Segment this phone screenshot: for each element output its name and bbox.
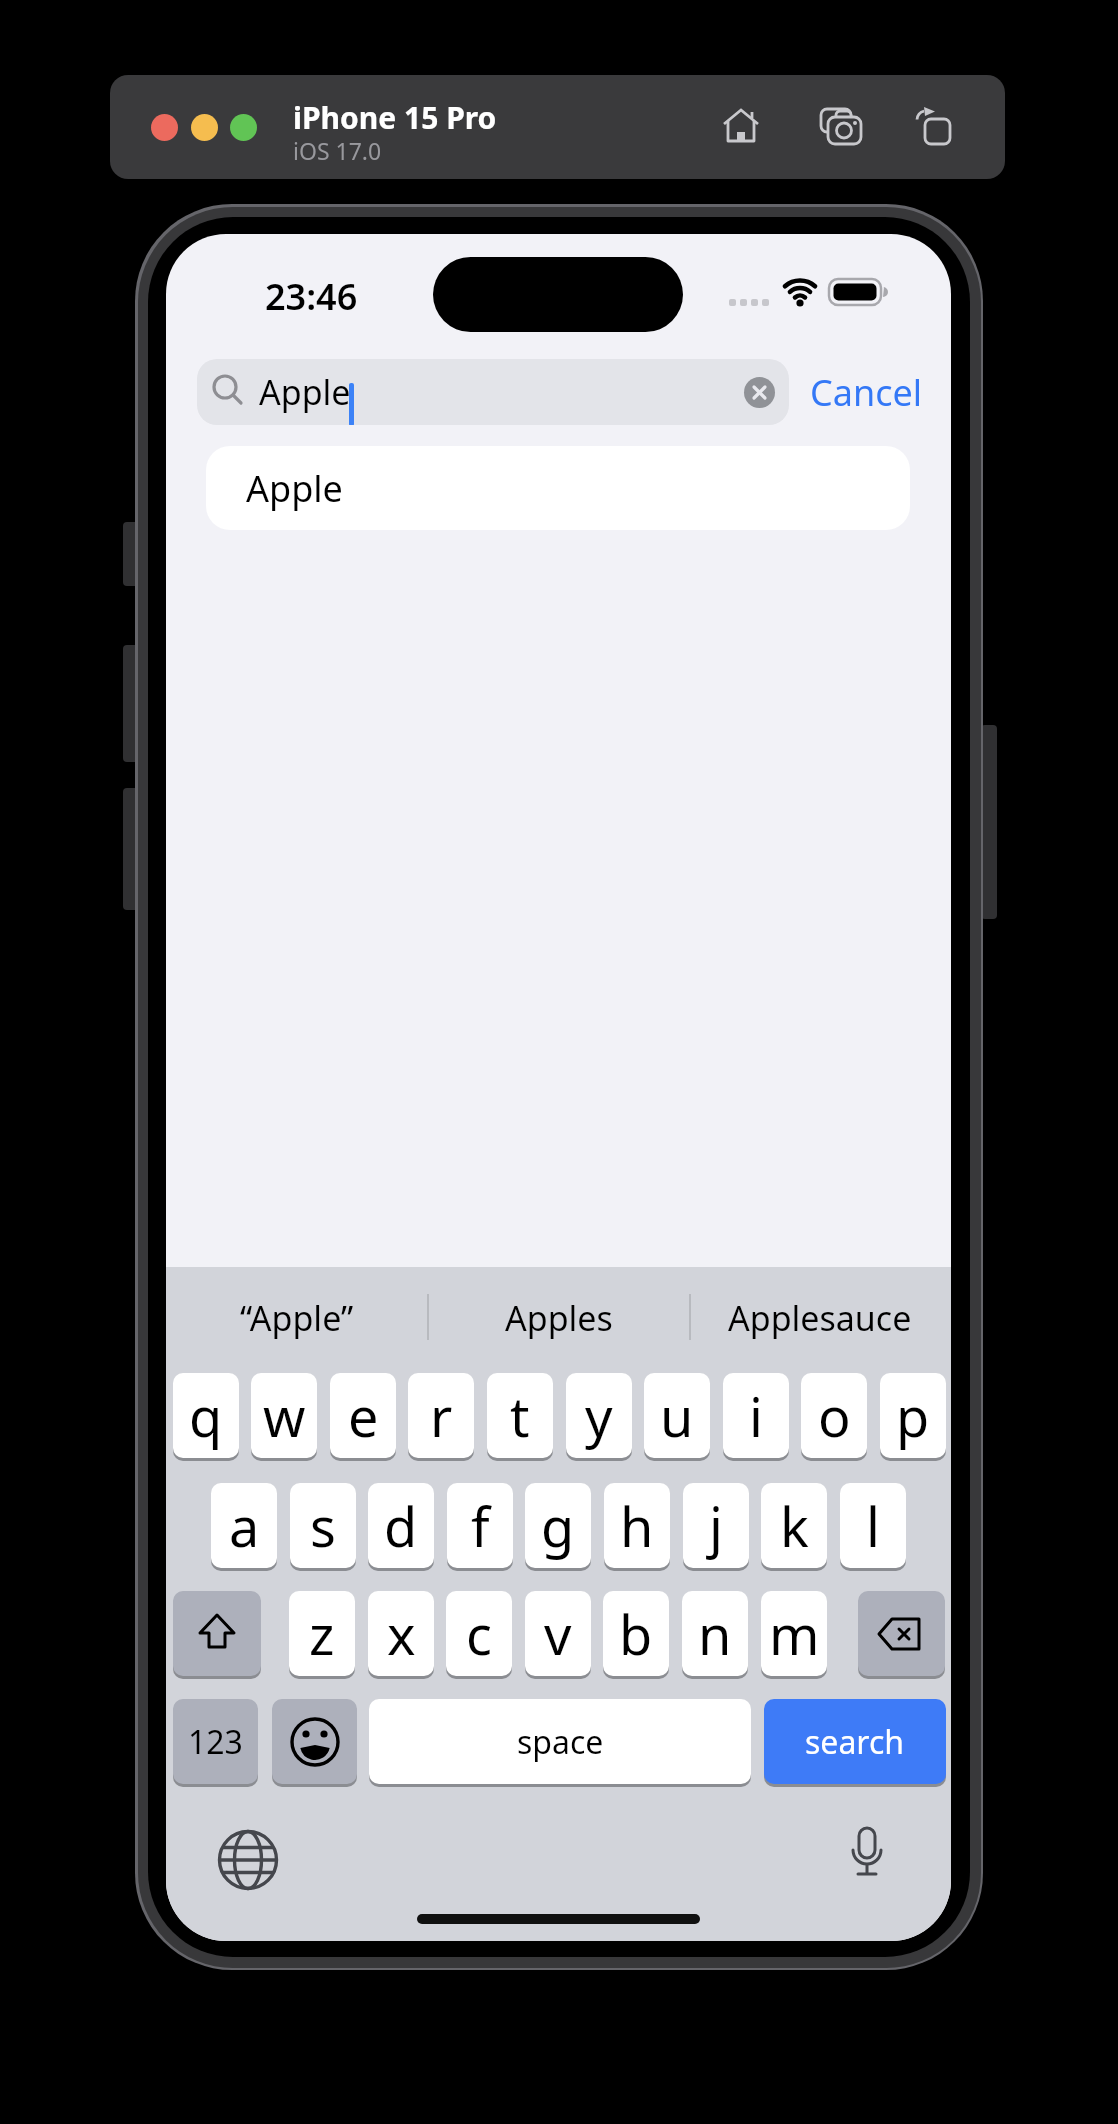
staticText: y: [585, 1379, 613, 1453]
staticText: g: [541, 1489, 575, 1563]
button[interactable]: u: [644, 1373, 710, 1458]
staticText: i: [749, 1379, 763, 1453]
staticText: 123: [188, 1720, 243, 1764]
button[interactable]: Apple: [206, 446, 910, 530]
button[interactable]: b: [603, 1591, 669, 1676]
staticText: m: [769, 1597, 820, 1671]
button[interactable]: [723, 108, 759, 144]
staticText: space: [517, 1720, 604, 1764]
staticText: Apple: [246, 464, 343, 513]
button[interactable]: [849, 1826, 885, 1888]
staticText: Cancel: [810, 368, 923, 417]
button[interactable]: t: [487, 1373, 553, 1458]
button[interactable]: space: [369, 1699, 751, 1784]
button[interactable]: k: [761, 1483, 827, 1568]
staticText: iOS 17.0: [293, 135, 382, 166]
button[interactable]: c: [446, 1591, 512, 1676]
button[interactable]: [151, 114, 178, 141]
staticText: t: [510, 1379, 530, 1453]
staticText: s: [310, 1489, 336, 1563]
button[interactable]: j: [683, 1483, 749, 1568]
staticText: c: [466, 1597, 492, 1671]
button[interactable]: l: [840, 1483, 906, 1568]
staticText: search: [805, 1720, 905, 1764]
button[interactable]: s: [290, 1483, 356, 1568]
staticText: a: [229, 1489, 260, 1563]
button[interactable]: g: [525, 1483, 591, 1568]
button[interactable]: e: [330, 1373, 396, 1458]
staticText: h: [620, 1489, 654, 1563]
button[interactable]: i: [723, 1373, 789, 1458]
button[interactable]: w: [251, 1373, 317, 1458]
button[interactable]: m: [761, 1591, 827, 1676]
staticText: p: [896, 1379, 930, 1453]
button[interactable]: d: [368, 1483, 434, 1568]
staticText: o: [818, 1379, 851, 1453]
staticText: “Apple”: [240, 1295, 354, 1341]
button[interactable]: [820, 106, 862, 144]
button[interactable]: f: [447, 1483, 513, 1568]
staticText: k: [780, 1489, 809, 1563]
button[interactable]: v: [525, 1591, 591, 1676]
button[interactable]: search: [764, 1699, 946, 1784]
staticText: w: [263, 1379, 306, 1453]
button[interactable]: [744, 377, 775, 408]
staticText: Applesauce: [728, 1295, 912, 1341]
staticText: l: [866, 1489, 880, 1563]
button[interactable]: q: [173, 1373, 239, 1458]
staticText: iPhone 15 Pro: [293, 97, 497, 138]
button[interactable]: “Apple”: [166, 1279, 428, 1357]
button[interactable]: [191, 114, 218, 141]
button[interactable]: [272, 1699, 357, 1784]
staticText: Apple: [259, 369, 351, 415]
button[interactable]: r: [408, 1373, 474, 1458]
button[interactable]: y: [566, 1373, 632, 1458]
button[interactable]: a: [211, 1483, 277, 1568]
button[interactable]: x: [368, 1591, 434, 1676]
button[interactable]: [914, 106, 952, 144]
button[interactable]: z: [289, 1591, 355, 1676]
staticText: z: [309, 1597, 335, 1671]
staticText: j: [709, 1489, 723, 1563]
staticText: d: [384, 1489, 418, 1563]
button[interactable]: o: [801, 1373, 867, 1458]
button[interactable]: n: [682, 1591, 748, 1676]
button[interactable]: p: [880, 1373, 946, 1458]
staticText: 23:46: [265, 272, 358, 320]
staticText: Apples: [505, 1295, 613, 1341]
staticText: n: [698, 1597, 732, 1671]
button[interactable]: Apple: [197, 359, 789, 425]
button[interactable]: Cancel: [806, 359, 927, 425]
staticText: e: [348, 1379, 379, 1453]
staticText: r: [430, 1379, 453, 1453]
staticText: f: [471, 1489, 490, 1563]
button[interactable]: [230, 114, 257, 141]
staticText: u: [660, 1379, 694, 1453]
button[interactable]: 123: [173, 1699, 258, 1784]
button[interactable]: [219, 1831, 277, 1889]
button[interactable]: h: [604, 1483, 670, 1568]
staticText: q: [189, 1379, 223, 1453]
staticText: x: [387, 1597, 416, 1671]
staticText: v: [544, 1597, 572, 1671]
button[interactable]: [858, 1591, 945, 1676]
staticText: b: [619, 1597, 653, 1671]
button[interactable]: [173, 1591, 261, 1676]
button[interactable]: Applesauce: [689, 1279, 951, 1357]
button[interactable]: Apples: [428, 1279, 690, 1357]
